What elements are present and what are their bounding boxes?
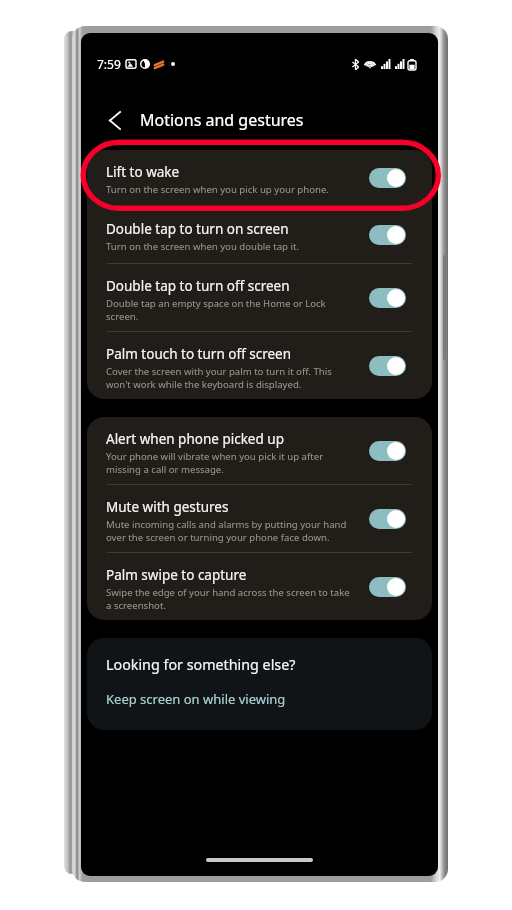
staticText: 7:59 [97, 56, 121, 72]
button[interactable]: Toggle [369, 168, 406, 188]
button[interactable]: Double tap to turn on screen [87, 207, 432, 263]
button[interactable]: Back [99, 105, 129, 135]
button[interactable]: Toggle [369, 225, 406, 245]
button[interactable]: Palm swipe to capture [87, 553, 432, 620]
button[interactable]: Toggle [369, 441, 406, 461]
staticText: Palm swipe to capture [106, 566, 247, 584]
staticText: Alert when phone picked up [106, 430, 284, 448]
staticText: Double tap to turn on screen [106, 220, 289, 238]
staticText: Motions and gestures [140, 109, 304, 131]
staticText: Double tap to turn off screen [106, 277, 290, 295]
staticText: Mute incoming calls and alarms by puttin… [106, 518, 347, 544]
button[interactable]: Looking for something else? [87, 638, 432, 730]
staticText: Swipe the edge of your hand across the s… [106, 586, 350, 612]
staticText: Double tap an empty space on the Home or… [106, 297, 326, 323]
staticText: Cover the screen with your palm to turn … [106, 365, 332, 391]
staticText: Turn on the screen when you pick up your… [106, 183, 329, 196]
staticText: Keep screen on while viewing [106, 690, 286, 708]
button[interactable]: Toggle [369, 356, 406, 376]
staticText: Lift to wake [106, 163, 180, 181]
staticText: Looking for something else? [106, 655, 296, 674]
button[interactable]: Double tap to turn off screen [87, 264, 432, 331]
staticText: Mute with gestures [106, 498, 229, 516]
button[interactable]: Toggle [369, 577, 406, 597]
button[interactable]: Palm touch to turn off screen [87, 332, 432, 399]
staticText: Palm touch to turn off screen [106, 345, 292, 363]
button[interactable]: Toggle [369, 509, 406, 529]
button[interactable]: Lift to wake [87, 150, 432, 206]
button[interactable]: Toggle [369, 288, 406, 308]
button[interactable]: Alert when phone picked up [87, 417, 432, 484]
staticText: Your phone will vibrate when you pick it… [106, 450, 324, 476]
button[interactable]: Mute with gestures [87, 485, 432, 552]
staticText: Turn on the screen when you double tap i… [106, 240, 299, 253]
